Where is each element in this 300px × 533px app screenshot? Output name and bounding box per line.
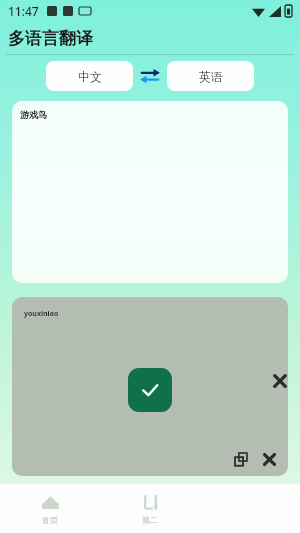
button[interactable]: Clear: [258, 448, 280, 470]
staticText: 中文: [78, 69, 102, 84]
staticText: 多语言翻译: [8, 28, 93, 49]
staticText: 第二: [142, 515, 158, 525]
button[interactable]: Translate: [128, 368, 172, 412]
button[interactable]: Copy: [230, 448, 252, 470]
button[interactable]: 首页: [0, 484, 100, 533]
button[interactable]: 游戏鸟: [12, 101, 288, 283]
button[interactable]: Swap languages: [133, 61, 167, 91]
staticText: 11:47: [8, 3, 39, 19]
button[interactable]: 第二: [100, 484, 200, 533]
button[interactable]: Clear input: [268, 369, 292, 393]
staticText: 英语: [199, 69, 223, 84]
button[interactable]: 中文: [46, 61, 133, 91]
staticText: youxiniao: [24, 309, 59, 319]
button[interactable]: youxiniao: [12, 297, 288, 476]
button[interactable]: 英语: [167, 61, 254, 91]
staticText: 游戏鸟: [20, 109, 47, 120]
staticText: 首页: [42, 515, 58, 525]
